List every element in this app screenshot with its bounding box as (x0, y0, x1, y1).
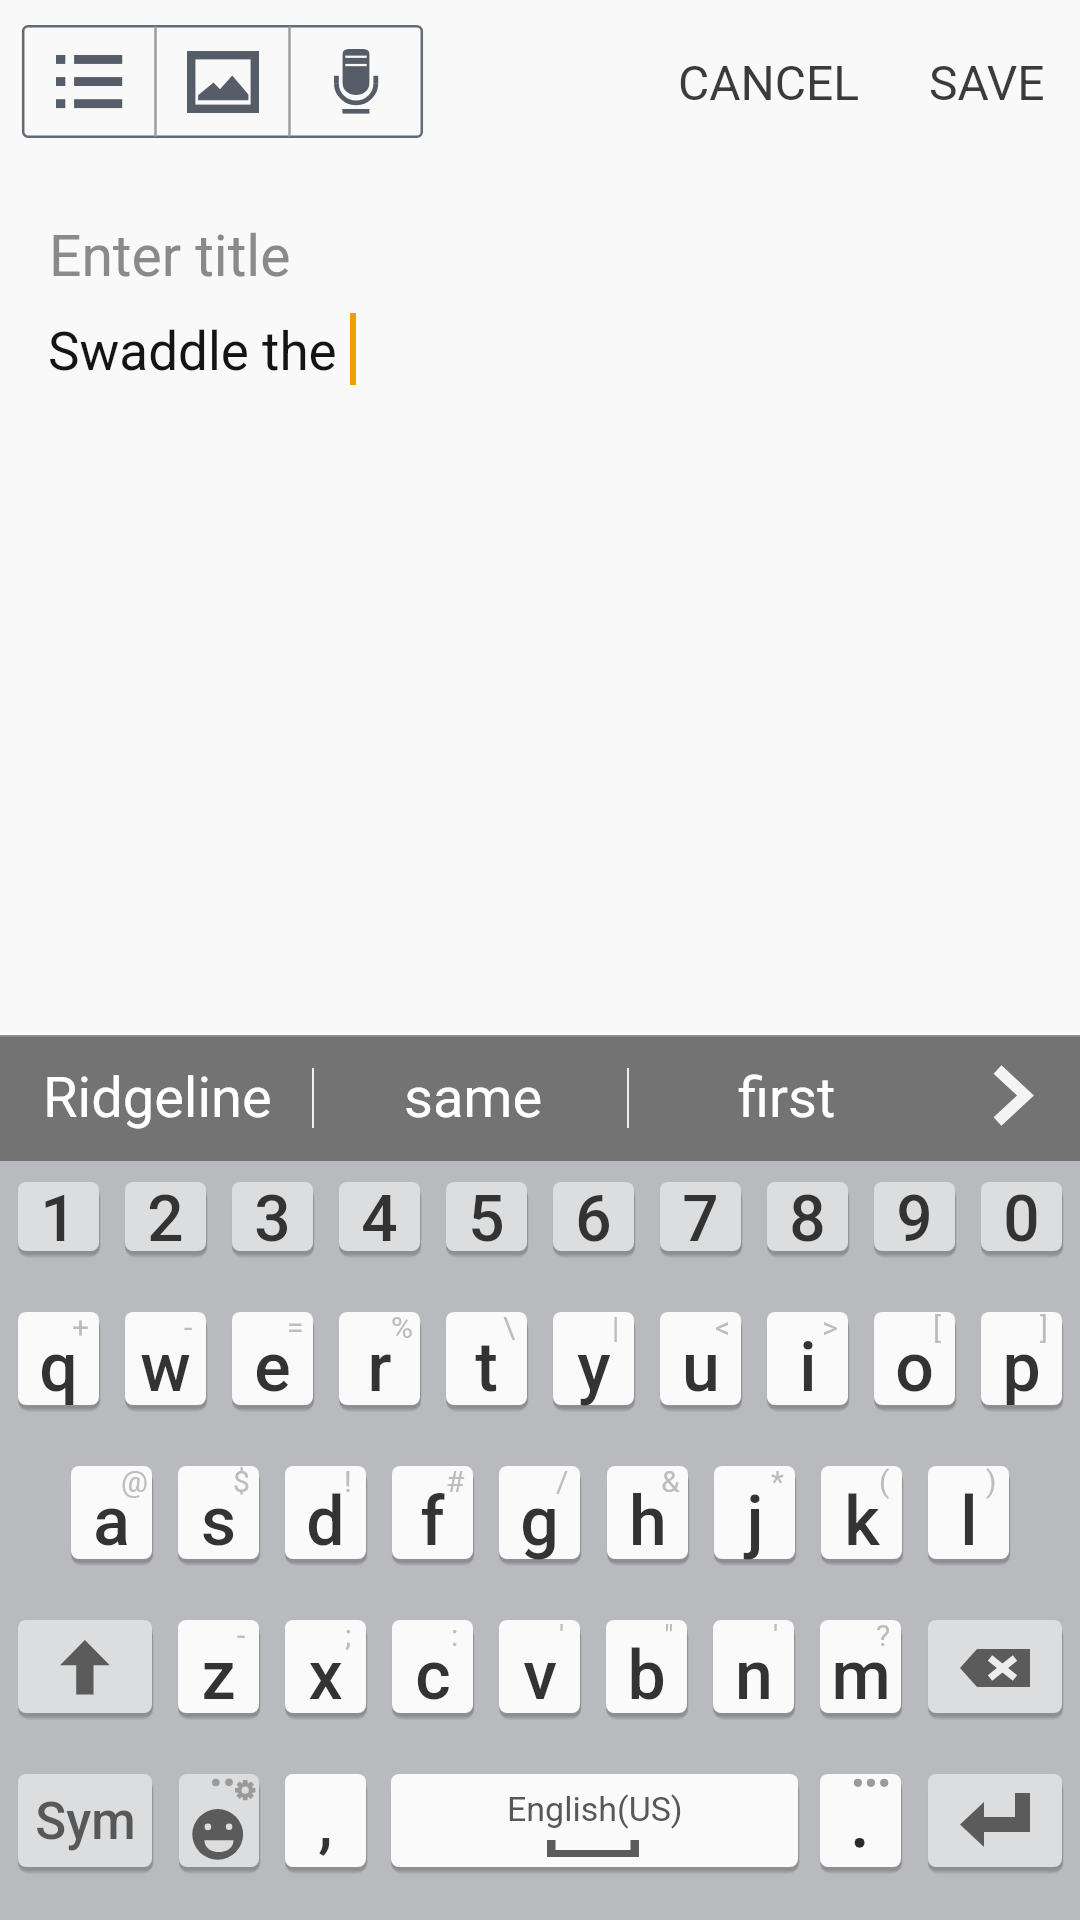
button[interactable]: 0 (981, 1182, 1062, 1253)
button[interactable]: w (125, 1312, 206, 1407)
button[interactable]: n (713, 1620, 794, 1715)
button[interactable]: l (928, 1466, 1009, 1561)
staticText: ' (773, 1618, 779, 1653)
staticText: d (306, 1482, 345, 1562)
button[interactable]: r (339, 1312, 420, 1407)
button[interactable]: o (874, 1312, 955, 1407)
staticText: ( (879, 1464, 890, 1499)
staticText: + (72, 1310, 90, 1345)
staticText: [ (933, 1310, 941, 1345)
button[interactable]: e (232, 1312, 313, 1407)
button[interactable]: z (178, 1620, 259, 1715)
button[interactable]: Space (391, 1774, 798, 1869)
staticText: x (308, 1636, 343, 1716)
button[interactable]: More suggestions (950, 1035, 1080, 1161)
staticText: j (746, 1482, 764, 1562)
staticText: a (93, 1482, 130, 1562)
button[interactable]: 4 (339, 1182, 420, 1253)
staticText: 2 (147, 1182, 184, 1253)
button[interactable]: 8 (767, 1182, 848, 1253)
staticText: r (367, 1328, 392, 1408)
button[interactable]: f (392, 1466, 473, 1561)
button[interactable]: h (607, 1466, 688, 1561)
staticText: g (520, 1482, 559, 1562)
button[interactable]: CANCEL (656, 33, 881, 133)
button[interactable]: b (606, 1620, 687, 1715)
staticText: & (661, 1464, 680, 1499)
staticText: 1 (40, 1182, 77, 1253)
staticText: # (446, 1464, 465, 1499)
staticText: - (184, 1310, 193, 1345)
button[interactable]: x (285, 1620, 366, 1715)
button[interactable]: v (499, 1620, 580, 1715)
button[interactable]: Ridgeline (4, 1035, 310, 1161)
button[interactable]: j (714, 1466, 795, 1561)
button[interactable]: Backspace (928, 1620, 1062, 1715)
button[interactable]: Shift (18, 1620, 152, 1715)
staticText: h (629, 1482, 667, 1562)
staticText: $ (233, 1464, 250, 1499)
staticText: > (822, 1310, 838, 1345)
button[interactable]: Voice recording (290, 25, 423, 138)
button[interactable]: Emoji (179, 1774, 259, 1869)
staticText: q (39, 1328, 78, 1408)
button[interactable]: u (660, 1312, 741, 1407)
staticText: 9 (896, 1182, 933, 1253)
staticText: 6 (575, 1182, 612, 1253)
staticText: / (556, 1464, 569, 1499)
staticText: i (799, 1328, 817, 1408)
button[interactable]: same (320, 1035, 626, 1161)
staticText: y (577, 1328, 611, 1408)
button[interactable]: g (499, 1466, 580, 1561)
staticText: SAVE (929, 55, 1045, 111)
button[interactable]: 2 (125, 1182, 206, 1253)
staticText: , (318, 1786, 333, 1861)
staticText: ! (344, 1464, 352, 1499)
staticText: c (415, 1636, 451, 1716)
button[interactable]: p (981, 1312, 1062, 1407)
button[interactable]: y (553, 1312, 634, 1407)
button[interactable]: d (285, 1466, 366, 1561)
staticText: 5 (468, 1182, 505, 1253)
button[interactable]: i (767, 1312, 848, 1407)
button[interactable]: Period (820, 1774, 901, 1869)
staticText: m (831, 1636, 891, 1716)
staticText: ; (345, 1618, 352, 1653)
button[interactable]: SAVE (907, 33, 1067, 133)
staticText: f (420, 1482, 445, 1562)
staticText: b (627, 1636, 666, 1716)
staticText: @ (121, 1464, 148, 1499)
staticText: % (391, 1310, 413, 1345)
button[interactable]: 1 (18, 1182, 99, 1253)
staticText: | (612, 1310, 620, 1345)
staticText: ] (1040, 1310, 1048, 1345)
button[interactable]: m (820, 1620, 901, 1715)
staticText: t (475, 1328, 498, 1408)
staticText: 0 (1003, 1182, 1040, 1253)
button[interactable]: , (285, 1774, 366, 1869)
button[interactable]: 3 (232, 1182, 313, 1253)
staticText: k (844, 1482, 880, 1562)
staticText: same (404, 1065, 543, 1131)
button[interactable]: Sym (18, 1774, 152, 1869)
button[interactable]: Enter (928, 1774, 1062, 1869)
button[interactable]: first (634, 1035, 940, 1161)
button[interactable]: Checklist (22, 25, 156, 138)
button[interactable]: q (18, 1312, 99, 1407)
button[interactable]: 7 (660, 1182, 741, 1253)
button[interactable]: 9 (874, 1182, 955, 1253)
staticText: 3 (254, 1182, 291, 1253)
button[interactable]: a (71, 1466, 152, 1561)
button[interactable]: 5 (446, 1182, 527, 1253)
staticText: ) (986, 1464, 997, 1499)
staticText: ? (876, 1618, 891, 1653)
button[interactable]: 6 (553, 1182, 634, 1253)
button[interactable]: t (446, 1312, 527, 1407)
button[interactable]: s (178, 1466, 259, 1561)
button[interactable]: k (821, 1466, 902, 1561)
staticText: 4 (361, 1182, 398, 1253)
staticText: o (895, 1328, 934, 1408)
staticText: Enter title (49, 223, 291, 290)
button[interactable]: c (392, 1620, 473, 1715)
button[interactable]: Insert image (156, 25, 290, 138)
